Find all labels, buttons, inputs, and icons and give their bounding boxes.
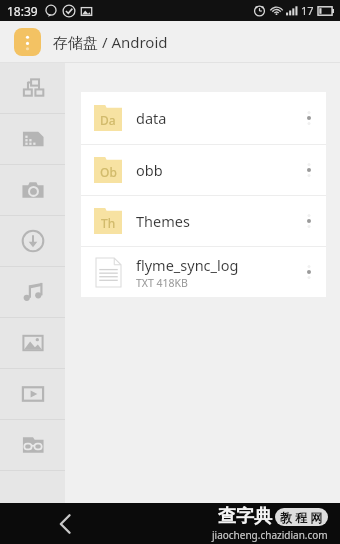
staticText: flyme_sync_log: [136, 255, 239, 275]
button[interactable]: Documents: [0, 420, 65, 470]
staticText: obb: [136, 160, 163, 180]
button[interactable]: Categories: [0, 63, 65, 113]
button[interactable]: Music: [0, 267, 65, 317]
staticText: data: [136, 108, 167, 128]
button[interactable]: More options: [292, 247, 326, 297]
button[interactable]: Storage: [14, 28, 41, 56]
staticText: Da: [100, 112, 116, 128]
button[interactable]: More options: [292, 145, 326, 195]
button[interactable]: Ob: [81, 145, 326, 195]
button[interactable]: Downloads: [0, 216, 65, 266]
staticText: Themes: [136, 211, 190, 231]
staticText: jiaocheng.chazidian.com: [212, 528, 328, 542]
staticText: 18:39: [7, 3, 38, 19]
staticText: 查字典: [218, 505, 272, 528]
staticText: Th: [101, 215, 116, 231]
button[interactable]: Videos: [0, 369, 65, 419]
staticText: TXT 418KB: [136, 276, 188, 290]
button[interactable]: Th: [81, 196, 326, 246]
button[interactable]: Camera: [0, 165, 65, 215]
button[interactable]: Images: [0, 318, 65, 368]
button[interactable]: Da: [81, 92, 326, 144]
button[interactable]: SD Card: [0, 114, 65, 164]
staticText: 教 程 网: [280, 509, 323, 525]
staticText: Ob: [100, 164, 117, 180]
staticText: 存储盘 / Android: [53, 32, 168, 52]
staticText: 17: [301, 3, 314, 18]
button[interactable]: More options: [292, 196, 326, 246]
button[interactable]: flyme_sync_log: [81, 247, 326, 297]
button[interactable]: Back: [0, 503, 129, 544]
button[interactable]: More options: [292, 92, 326, 144]
